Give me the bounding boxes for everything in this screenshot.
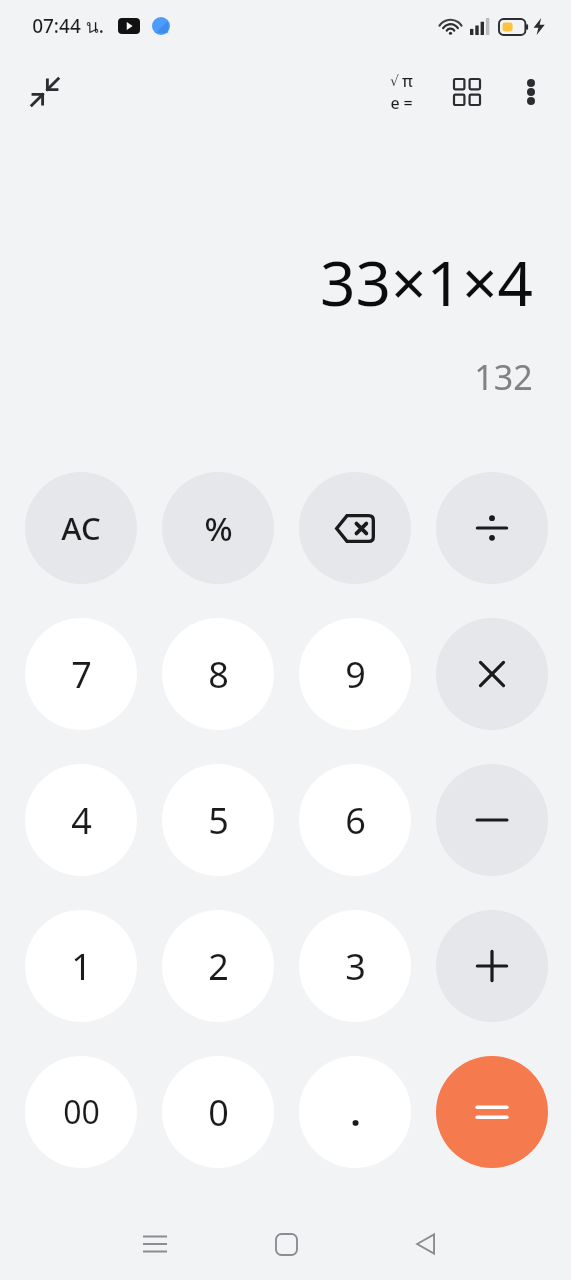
staticText: =	[403, 92, 413, 114]
button[interactable]: Scientific mode	[371, 62, 431, 122]
button[interactable]: 0	[162, 1056, 274, 1168]
button[interactable]: Multiply	[436, 618, 548, 730]
button[interactable]: More options	[501, 62, 561, 122]
staticText: 00	[63, 1090, 100, 1134]
button[interactable]: .	[299, 1056, 411, 1168]
staticText: 8	[208, 650, 229, 699]
button[interactable]: 7	[25, 618, 137, 730]
button[interactable]: Divide	[436, 472, 548, 584]
button[interactable]: Backspace	[299, 472, 411, 584]
button[interactable]: %	[162, 472, 274, 584]
staticText: AC	[61, 507, 101, 549]
staticText: 3	[345, 942, 366, 991]
staticText: 7	[71, 650, 92, 699]
staticText: 132	[474, 354, 533, 400]
staticText: 9	[345, 650, 366, 699]
button[interactable]: 5	[162, 764, 274, 876]
button[interactable]: Subtract	[436, 764, 548, 876]
staticText: 4	[71, 796, 92, 845]
staticText: 5	[208, 796, 229, 845]
staticText: 33×1×4	[320, 240, 533, 324]
staticText: 6	[345, 796, 366, 845]
button[interactable]: Add	[436, 910, 548, 1022]
button[interactable]: Collapse	[14, 61, 76, 123]
button[interactable]: Recents	[125, 1214, 185, 1274]
staticText: 1	[71, 942, 92, 991]
button[interactable]: 4	[25, 764, 137, 876]
staticText: %	[204, 506, 233, 551]
button[interactable]: 00	[25, 1056, 137, 1168]
staticText: 0	[208, 1088, 229, 1137]
button[interactable]: AC	[25, 472, 137, 584]
staticText: 07:44 น.	[32, 11, 104, 41]
button[interactable]: Unit converter	[437, 62, 497, 122]
button[interactable]: Equals	[436, 1056, 548, 1168]
button[interactable]: 2	[162, 910, 274, 1022]
button[interactable]: 6	[299, 764, 411, 876]
button[interactable]: 3	[299, 910, 411, 1022]
staticText: 2	[208, 942, 229, 991]
staticText: π	[402, 70, 413, 92]
staticText: .	[350, 1088, 361, 1137]
button[interactable]: 1	[25, 910, 137, 1022]
button[interactable]: Back	[395, 1214, 455, 1274]
staticText: e	[390, 92, 400, 114]
button[interactable]: Home	[256, 1214, 316, 1274]
staticText: √	[390, 73, 399, 89]
button[interactable]: 8	[162, 618, 274, 730]
button[interactable]: 9	[299, 618, 411, 730]
